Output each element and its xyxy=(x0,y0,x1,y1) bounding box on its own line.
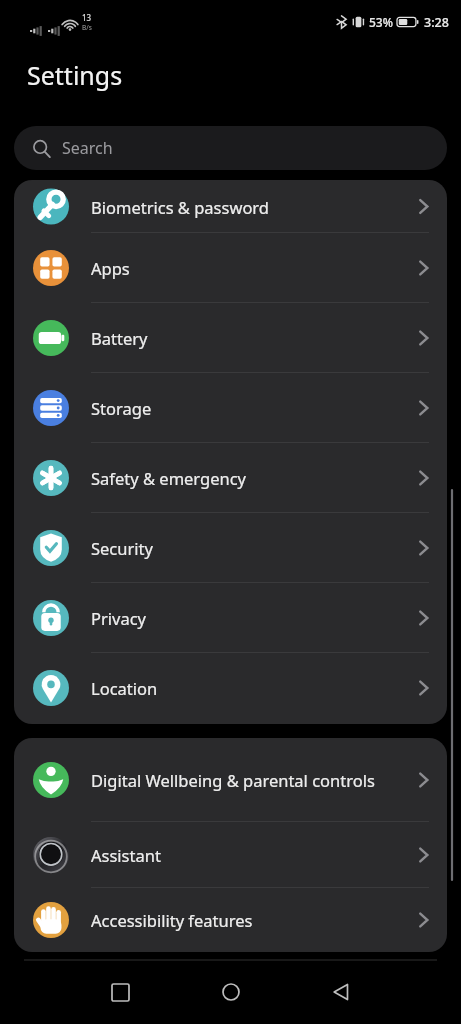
button[interactable]: Recent apps xyxy=(94,966,146,1018)
staticText: 13 xyxy=(82,12,92,23)
staticText: 3:28 xyxy=(424,14,449,31)
staticText: Battery xyxy=(91,327,148,349)
button[interactable]: Apps xyxy=(14,233,447,303)
button[interactable]: Assistant xyxy=(14,822,447,888)
button[interactable]: Back xyxy=(315,966,367,1018)
staticText: Location xyxy=(91,677,158,699)
staticText: Biometrics & password xyxy=(91,196,270,218)
staticText: Safety & emergency xyxy=(91,467,247,489)
staticText: B/s xyxy=(82,23,92,32)
button[interactable]: Security xyxy=(14,513,447,583)
staticText: Search xyxy=(62,137,113,159)
staticText: Settings xyxy=(27,58,123,92)
staticText: Security xyxy=(91,537,153,559)
staticText: Assistant xyxy=(91,844,161,866)
staticText: Accessibility features xyxy=(91,909,253,931)
button[interactable]: Storage xyxy=(14,373,447,443)
button[interactable]: Privacy xyxy=(14,583,447,653)
staticText: 53% xyxy=(369,14,393,30)
button[interactable]: Home xyxy=(205,966,257,1018)
staticText: Apps xyxy=(91,257,130,279)
button[interactable]: Digital Wellbeing & parental controls xyxy=(14,738,447,822)
button[interactable]: Biometrics & password xyxy=(14,180,447,233)
button[interactable]: Accessibility features xyxy=(14,888,447,952)
staticText: Privacy xyxy=(91,607,147,629)
button[interactable]: Location xyxy=(14,653,447,723)
button[interactable]: Search xyxy=(14,126,447,170)
button[interactable]: Safety & emergency xyxy=(14,443,447,513)
staticText: Digital Wellbeing & parental controls xyxy=(91,769,375,791)
button[interactable]: Battery xyxy=(14,303,447,373)
staticText: Storage xyxy=(91,397,152,419)
